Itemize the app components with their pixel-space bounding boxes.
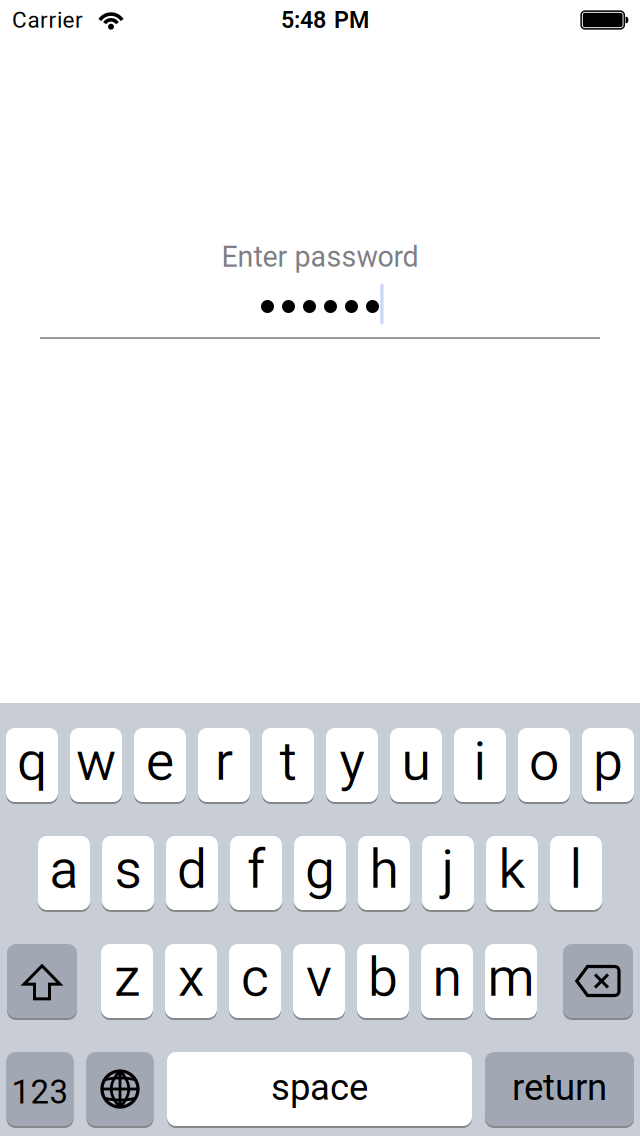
button[interactable]: w <box>70 728 122 802</box>
button[interactable]: Next keyboard <box>86 1052 153 1126</box>
staticText: v <box>306 946 332 1009</box>
staticText: d <box>177 838 207 901</box>
staticText: f <box>247 838 265 901</box>
button[interactable]: i <box>454 728 506 802</box>
button[interactable]: z <box>101 944 153 1018</box>
staticText: z <box>114 946 140 1009</box>
staticText: 5:48 <box>281 6 326 34</box>
button[interactable]: Delete <box>563 944 633 1018</box>
button[interactable]: m <box>485 944 537 1018</box>
button[interactable]: h <box>358 836 410 910</box>
button[interactable]: s <box>102 836 154 910</box>
staticText: space <box>271 1066 368 1109</box>
staticText: j <box>441 838 454 901</box>
staticText: b <box>368 946 398 1009</box>
button[interactable]: f <box>230 836 282 910</box>
button[interactable]: r <box>198 728 250 802</box>
button[interactable]: g <box>294 836 346 910</box>
staticText: k <box>498 838 525 901</box>
button[interactable]: b <box>357 944 409 1018</box>
staticText: g <box>305 838 335 901</box>
button[interactable]: y <box>326 728 378 802</box>
staticText: m <box>487 946 534 1009</box>
button[interactable]: a <box>38 836 90 910</box>
button[interactable]: q <box>6 728 58 802</box>
button[interactable]: j <box>422 836 474 910</box>
button[interactable]: u <box>390 728 442 802</box>
button[interactable]: n <box>421 944 473 1018</box>
staticText: l <box>569 838 582 901</box>
button[interactable]: o <box>518 728 570 802</box>
button[interactable]: Password <box>40 236 600 338</box>
staticText: w <box>76 730 116 793</box>
staticText: Carrier <box>12 7 83 33</box>
staticText: t <box>279 730 296 793</box>
staticText: a <box>49 838 78 901</box>
button[interactable]: v <box>293 944 345 1018</box>
button[interactable]: return <box>485 1052 634 1126</box>
staticText: h <box>369 838 398 901</box>
staticText: e <box>146 730 174 793</box>
button[interactable]: e <box>134 728 186 802</box>
staticText: s <box>114 838 141 901</box>
staticText: c <box>241 946 269 1009</box>
button[interactable]: t <box>262 728 314 802</box>
staticText: PM <box>334 6 369 34</box>
button[interactable]: k <box>486 836 538 910</box>
button[interactable]: Shift <box>7 944 77 1018</box>
staticText: Enter password <box>221 240 418 274</box>
button[interactable]: c <box>229 944 281 1018</box>
staticText: y <box>339 730 364 793</box>
button[interactable]: space <box>167 1052 472 1126</box>
staticText: n <box>432 946 461 1009</box>
button[interactable]: l <box>550 836 602 910</box>
staticText: x <box>178 946 204 1009</box>
staticText: q <box>17 730 47 793</box>
button[interactable]: d <box>166 836 218 910</box>
button[interactable]: 123 <box>6 1052 73 1126</box>
staticText: return <box>512 1066 607 1109</box>
button[interactable]: x <box>165 944 217 1018</box>
button[interactable]: p <box>582 728 634 802</box>
staticText: i <box>473 730 486 793</box>
staticText: o <box>529 730 559 793</box>
staticText: u <box>401 730 430 793</box>
staticText: 123 <box>11 1073 68 1112</box>
staticText: r <box>215 730 233 793</box>
staticText: p <box>593 730 623 793</box>
